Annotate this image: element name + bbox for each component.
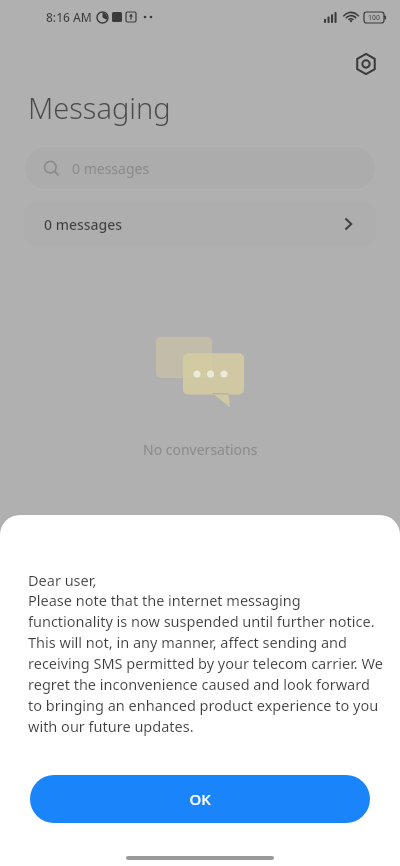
staticText: Messaging [28, 88, 171, 127]
staticText: 0 messages [72, 159, 150, 178]
staticText: Dear user, Please note that the internet… [28, 570, 384, 737]
button[interactable]: 0 messages [25, 147, 375, 189]
button[interactable]: Settings [348, 46, 384, 82]
staticText: 100 [368, 13, 381, 23]
staticText: 0 messages [44, 215, 123, 234]
button[interactable]: OK [30, 775, 370, 823]
staticText: OK [189, 789, 211, 809]
button[interactable]: 0 messages [25, 201, 375, 247]
staticText: 8:16 AM [46, 9, 92, 25]
staticText: No conversations [143, 440, 258, 459]
